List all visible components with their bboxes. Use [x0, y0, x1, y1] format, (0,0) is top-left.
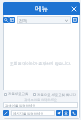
button[interactable]: Search: [3, 17, 9, 23]
button[interactable]: New: [3, 110, 9, 116]
button[interactable]: Call: [71, 110, 77, 116]
button[interactable]: Close: [69, 2, 79, 15]
staticText: 조회된 데이터가 존재하지 않습니다.: [10, 61, 71, 66]
button[interactable]: Download: [63, 110, 69, 116]
button[interactable]: Open: [72, 17, 78, 23]
staticText: 자동새로고침: [8, 92, 29, 96]
button[interactable]: 검색어를 입력하세요: [3, 102, 78, 108]
staticText: 검색어를 입력하세요: [5, 103, 36, 108]
staticText: 검색조건을 선택하세요: [24, 98, 57, 102]
staticText: 메시지를 입력하세요: [13, 111, 44, 116]
button[interactable]: 전체: [17, 16, 71, 24]
staticText: 자동으로 새로고침 합니다: [37, 92, 77, 97]
button[interactable]: 자동새로고침: [3, 92, 29, 96]
button[interactable]: 자동으로 새로고침 합니다: [33, 92, 78, 97]
staticText: 메뉴: [35, 5, 48, 13]
button[interactable]: Send: [56, 110, 62, 116]
staticText: 전체: [19, 18, 27, 23]
button[interactable]: 메시지를 입력하세요: [11, 110, 55, 116]
button[interactable]: List: [9, 17, 15, 23]
